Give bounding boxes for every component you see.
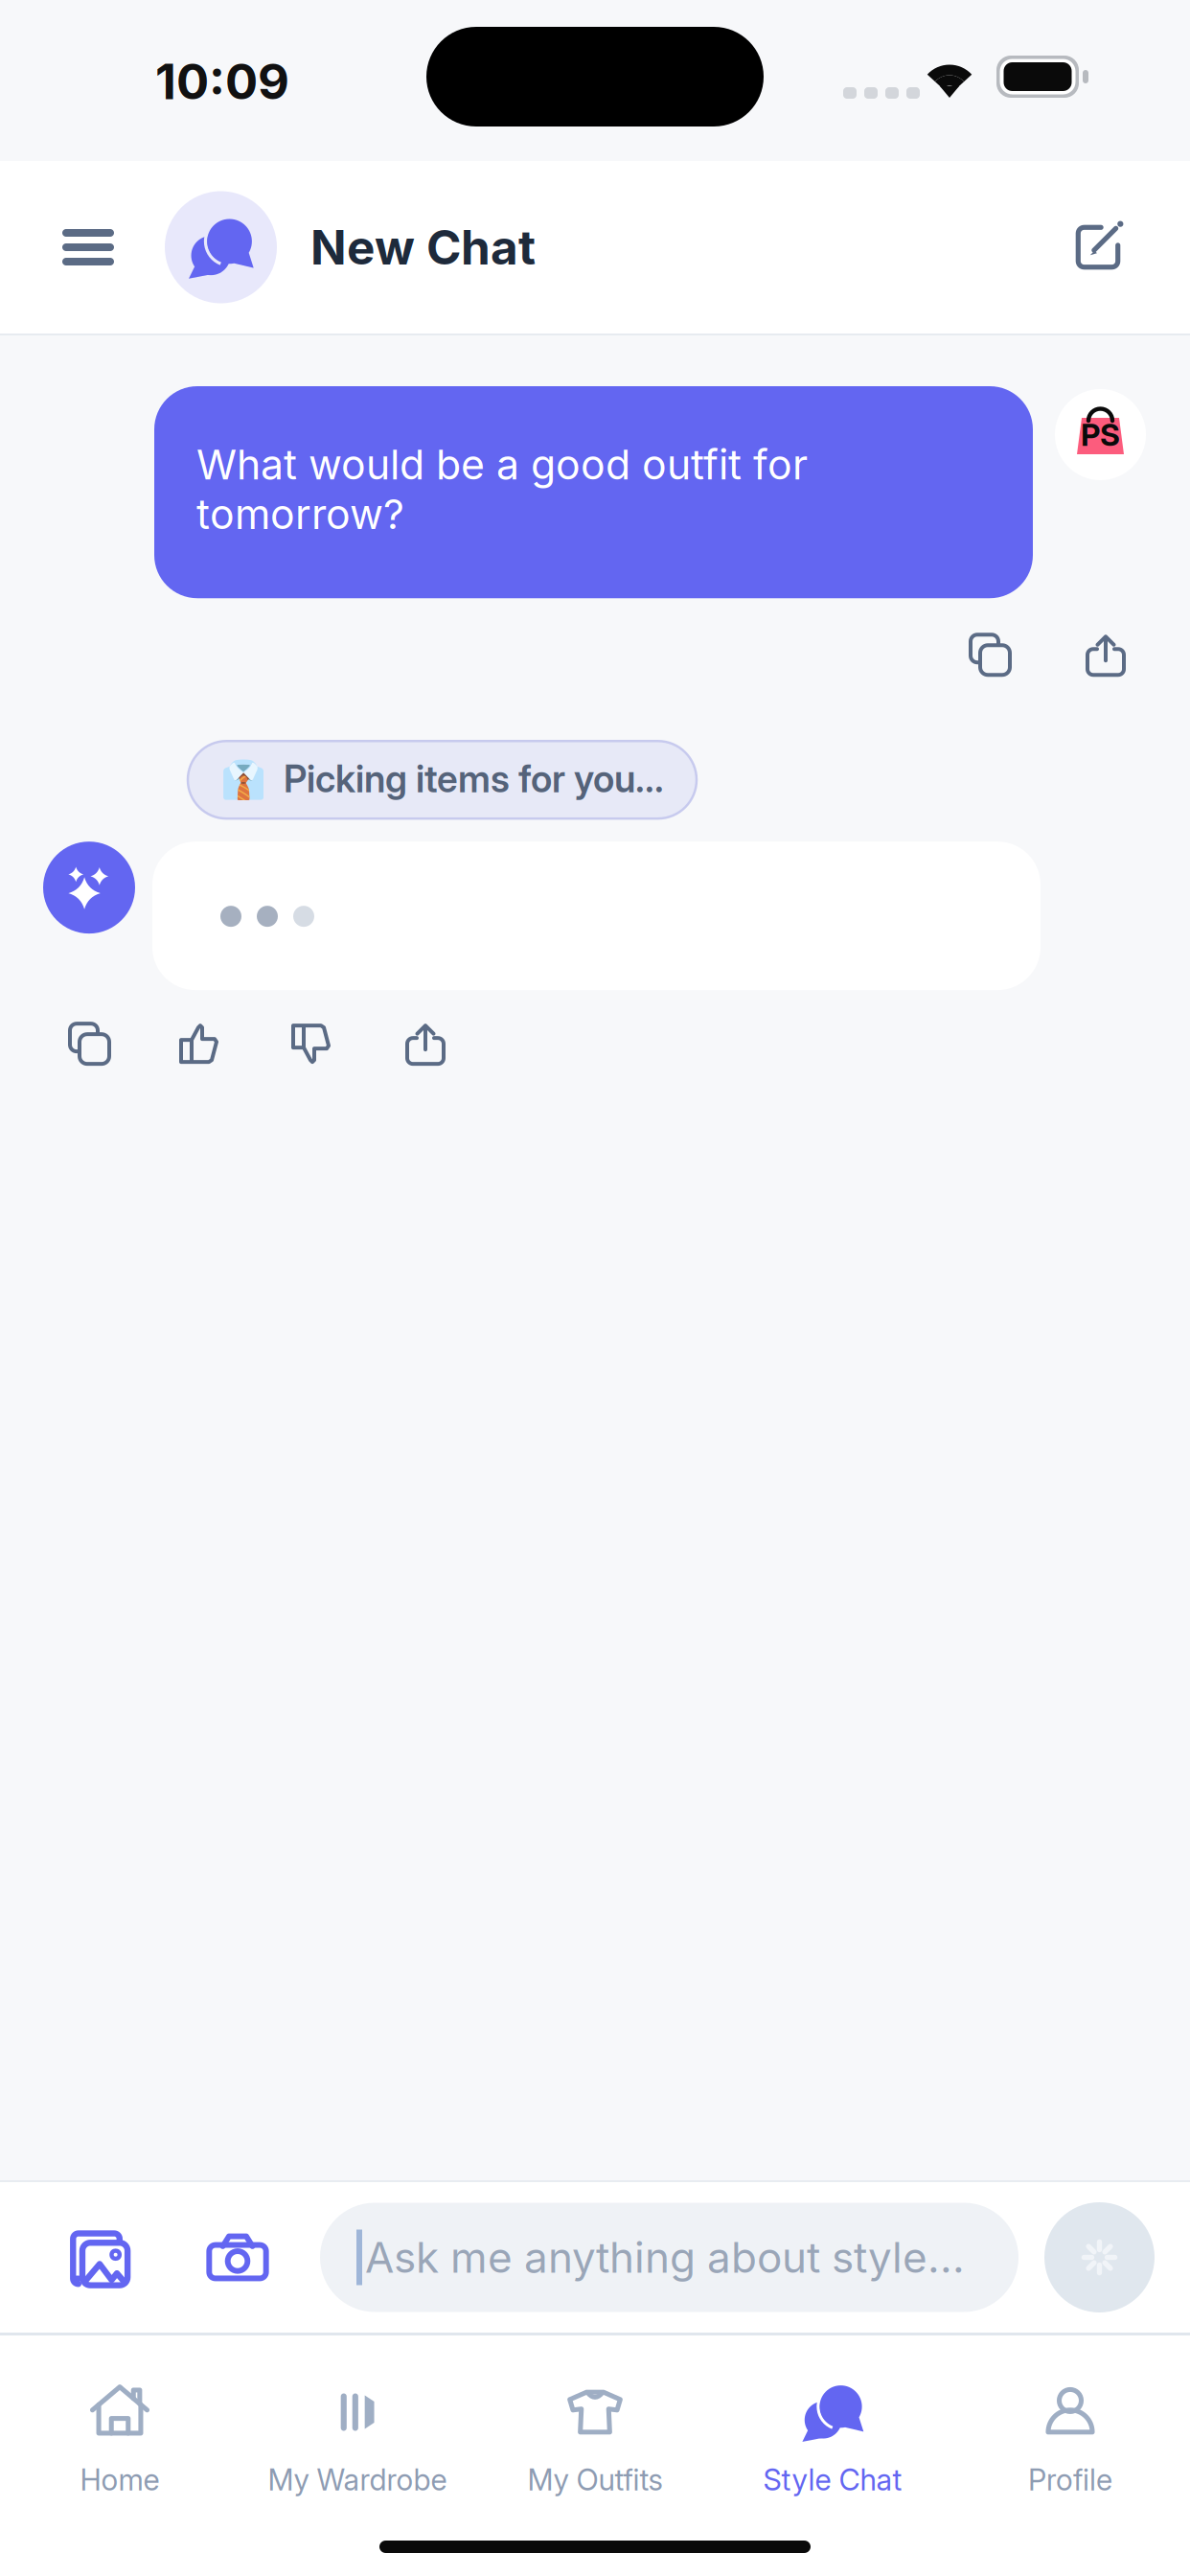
button[interactable]: Home	[1, 2380, 239, 2521]
staticText: 10:09	[155, 52, 289, 111]
staticText: 👔 Picking items for you...	[220, 756, 664, 801]
button[interactable]: Photo library	[54, 2211, 146, 2303]
button[interactable]: Share	[389, 1007, 462, 1080]
button[interactable]: Like	[161, 1007, 234, 1080]
button[interactable]: Style Chat	[714, 2380, 951, 2521]
staticText: New Chat	[310, 219, 536, 276]
button[interactable]: My Outfits	[476, 2380, 714, 2521]
button[interactable]: Dislike	[273, 1007, 346, 1080]
button[interactable]: Copy	[953, 618, 1026, 691]
staticText: Home	[80, 2462, 160, 2498]
staticText: My Outfits	[527, 2462, 663, 2498]
button[interactable]: Camera	[192, 2211, 284, 2303]
staticText: PS	[1081, 416, 1120, 453]
button[interactable]: Send	[1044, 2202, 1155, 2312]
staticText: Style Chat	[763, 2462, 902, 2498]
button[interactable]: Copy	[53, 1007, 126, 1080]
button[interactable]: Profile	[951, 2380, 1189, 2521]
button[interactable]: New chat	[1056, 205, 1140, 289]
staticText: What would be a good outfit for tomorrow…	[196, 440, 808, 539]
button[interactable]: Share	[1069, 618, 1142, 691]
staticText: My Wardrobe	[268, 2462, 447, 2498]
staticText: Ask me anything about style...	[365, 2232, 965, 2283]
staticText: Profile	[1028, 2462, 1112, 2498]
button[interactable]: My Wardrobe	[239, 2380, 476, 2521]
button[interactable]: Menu	[47, 206, 129, 288]
